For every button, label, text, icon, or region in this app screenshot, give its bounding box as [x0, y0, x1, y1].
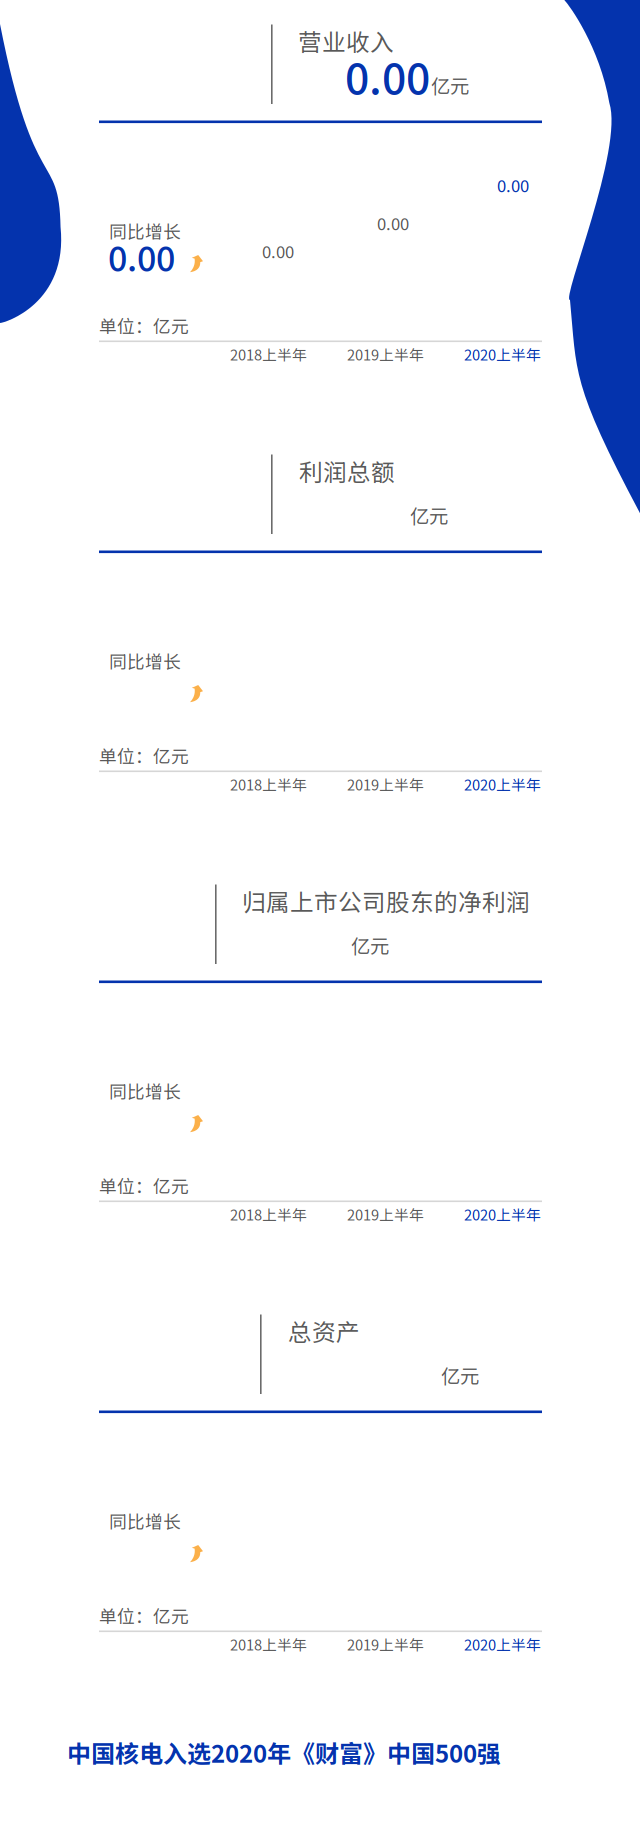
button[interactable]: 中国核电入选2020年《财富》中国500强 [67, 1735, 501, 1770]
staticText: 亿元 [431, 71, 469, 99]
staticText: 同比增长 [109, 1508, 181, 1533]
staticText: 0.00 [497, 173, 529, 197]
staticText: 单位：亿元 [99, 742, 189, 768]
staticText: 2019上半年 [347, 343, 424, 365]
staticText: 亿元 [441, 1361, 479, 1389]
staticText: 2019上半年 [347, 1203, 424, 1225]
staticText: 2018上半年 [230, 1203, 307, 1225]
staticText: 2020上半年 [464, 343, 541, 365]
staticText: 单位：亿元 [99, 1602, 189, 1628]
staticText: 单位：亿元 [99, 1172, 189, 1198]
staticText: 亿元 [410, 501, 448, 529]
staticText: 利润总额 [299, 453, 395, 488]
staticText: 2020上半年 [464, 1203, 541, 1225]
staticText: 单位：亿元 [99, 312, 189, 338]
staticText: 同比增长 [109, 1078, 181, 1103]
staticText: 同比增长 [109, 648, 181, 673]
staticText: 0.00 [345, 45, 430, 107]
staticText: 同比增长 [109, 218, 181, 243]
staticText: 0.00 [108, 232, 175, 281]
staticText: 0.00 [262, 239, 294, 263]
staticText: 2020上半年 [464, 1633, 541, 1655]
staticText: 0.00 [377, 211, 409, 235]
staticText: 亿元 [351, 931, 389, 959]
staticText: 2019上半年 [347, 1633, 424, 1655]
staticText: 2020上半年 [464, 773, 541, 795]
staticText: 2018上半年 [230, 773, 307, 795]
staticText: 营业收入 [298, 23, 394, 58]
staticText: 归属上市公司股东的净利润 [242, 883, 530, 918]
staticText: 总资产 [288, 1313, 360, 1348]
staticText: 2018上半年 [230, 343, 307, 365]
staticText: 中国核电入选2020年《财富》中国500强 [67, 1735, 501, 1770]
staticText: 2018上半年 [230, 1633, 307, 1655]
staticText: 2019上半年 [347, 773, 424, 795]
